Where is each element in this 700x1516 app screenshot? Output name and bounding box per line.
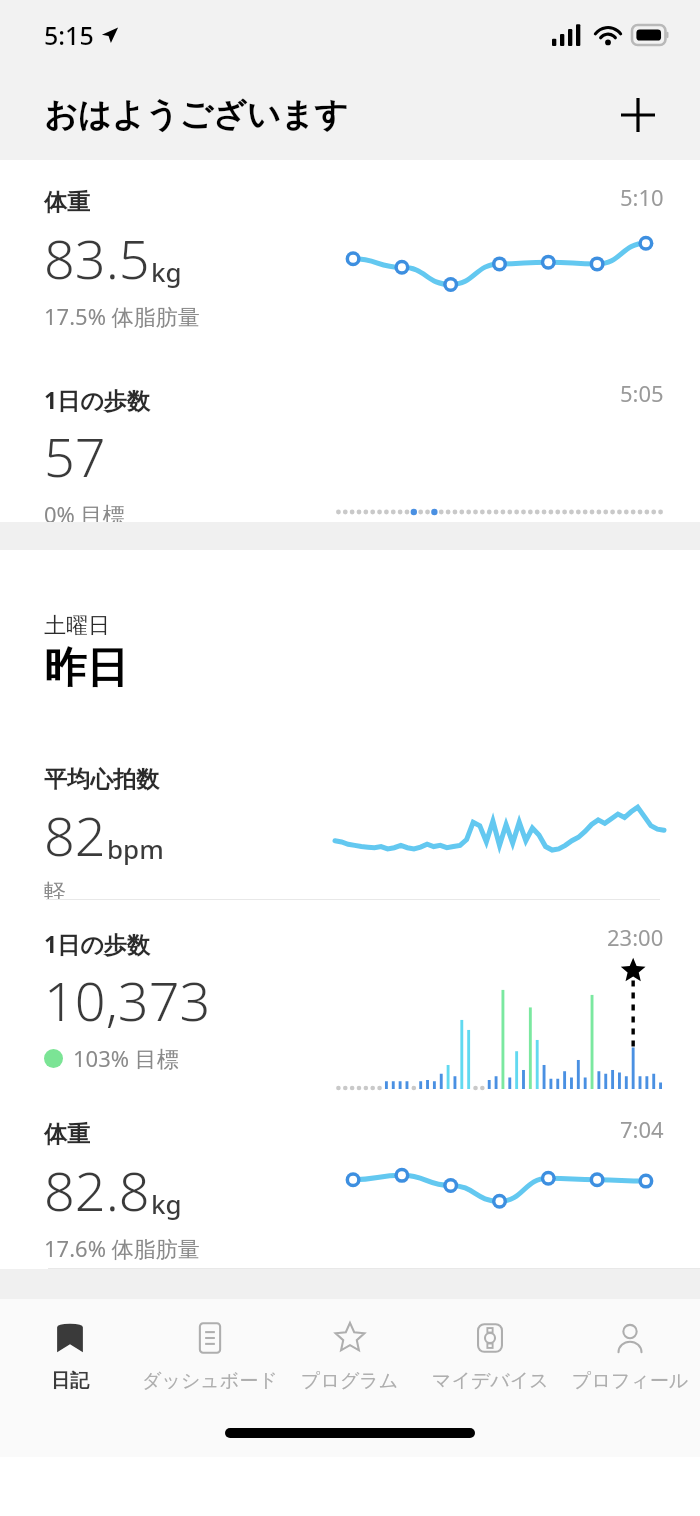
staticText: プロフィール: [572, 1369, 689, 1393]
staticText: 7:04: [620, 1114, 664, 1144]
button[interactable]: 日記: [0, 1299, 140, 1409]
staticText: 82: [44, 798, 106, 872]
staticText: 体重: [44, 1120, 90, 1149]
staticText: プログラム: [301, 1369, 399, 1393]
staticText: 57: [44, 419, 106, 493]
staticText: kg: [151, 254, 182, 289]
staticText: 平均心拍数: [44, 765, 159, 794]
staticText: 1日の歩数: [44, 384, 150, 415]
button[interactable]: 平均心拍数: [0, 737, 700, 899]
staticText: bpm: [107, 831, 164, 866]
staticText: 体重: [44, 188, 90, 217]
staticText: 5:10: [620, 182, 664, 212]
button[interactable]: 体重: [0, 160, 700, 356]
staticText: kg: [151, 1186, 182, 1221]
staticText: マイデバイス: [432, 1369, 549, 1393]
staticText: 5:05: [620, 378, 664, 408]
staticText: 昨日: [44, 642, 128, 695]
staticText: 17.5% 体脂肪量: [44, 301, 200, 331]
button[interactable]: 1日の歩数: [0, 900, 700, 1092]
staticText: 83.5: [44, 221, 150, 295]
staticText: 5:15: [44, 18, 94, 52]
staticText: 1日の歩数: [44, 928, 150, 959]
staticText: 23:00: [607, 922, 664, 952]
staticText: 82.8: [44, 1153, 150, 1227]
staticText: 103% 目標: [73, 1043, 179, 1073]
staticText: 10,373: [44, 963, 211, 1037]
button[interactable]: マイデバイス: [420, 1299, 560, 1409]
button[interactable]: ダッシュボード: [140, 1299, 280, 1409]
staticText: 17.6% 体脂肪量: [44, 1233, 200, 1263]
button[interactable]: プログラム: [280, 1299, 420, 1409]
button[interactable]: プロフィール: [560, 1299, 700, 1409]
staticText: おはようございます: [44, 94, 348, 136]
button[interactable]: 体重: [0, 1092, 700, 1268]
staticText: 軽: [44, 878, 66, 899]
button[interactable]: Add: [612, 89, 664, 141]
staticText: ダッシュボード: [142, 1369, 278, 1393]
staticText: 日記: [51, 1369, 89, 1393]
staticText: 0% 目標: [44, 499, 125, 522]
button[interactable]: 1日の歩数: [0, 356, 700, 522]
staticText: 土曜日: [44, 612, 110, 640]
